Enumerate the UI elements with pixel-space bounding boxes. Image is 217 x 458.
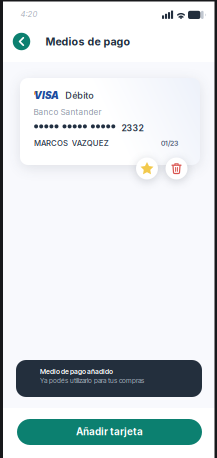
staticText: Medios de pago: [45, 35, 130, 48]
staticText: VAZQUEZ: [72, 138, 109, 148]
staticText: Medio de pago añadido: [40, 367, 113, 376]
button[interactable]: Back: [13, 33, 30, 50]
staticText: 2332: [121, 123, 143, 133]
staticText: Ya podés utilizarlo para tus compras: [40, 376, 144, 384]
staticText: Añadir tarjeta: [76, 426, 143, 437]
staticText: 4:20: [21, 10, 38, 19]
button[interactable]: Favorite: [136, 157, 158, 179]
staticText: 01/23: [161, 139, 178, 147]
staticText: Banco Santander: [34, 107, 102, 117]
staticText: VISA: [34, 89, 59, 101]
button[interactable]: Delete: [165, 157, 187, 179]
button[interactable]: Añadir tarjeta: [17, 419, 202, 445]
staticText: Débito: [65, 90, 93, 101]
staticText: MARCOS: [34, 138, 68, 148]
